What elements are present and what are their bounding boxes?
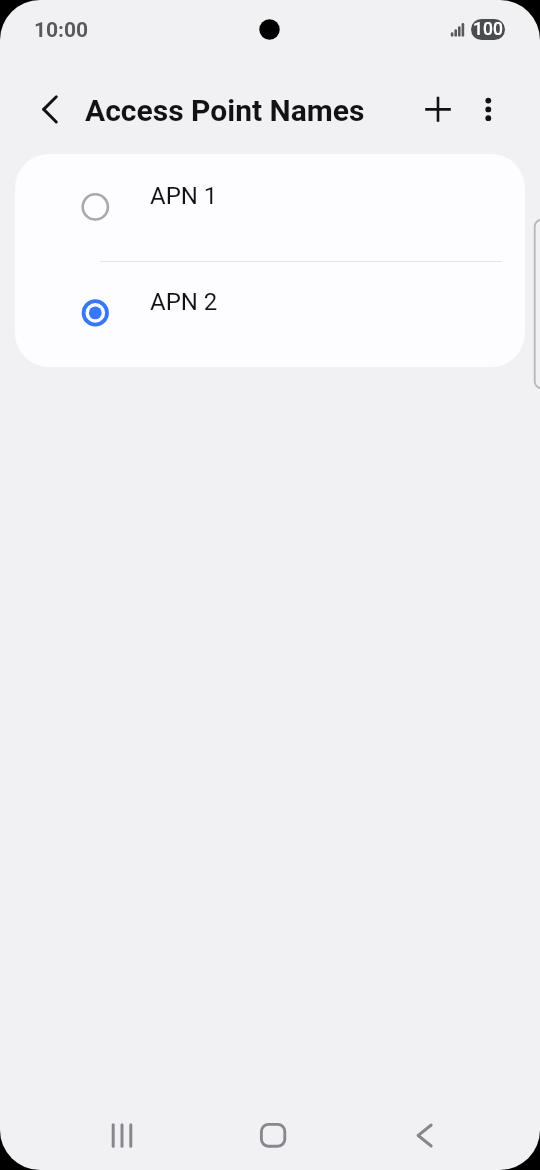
button[interactable]: Back — [348, 1098, 499, 1170]
button[interactable]: Home — [197, 1098, 348, 1170]
button[interactable]: Add — [416, 88, 460, 132]
button[interactable]: More options — [466, 88, 510, 132]
button[interactable]: Recents — [46, 1098, 197, 1170]
staticText: 100 — [473, 19, 503, 40]
staticText: 10:00 — [34, 18, 89, 43]
staticText: Access Point Names — [85, 93, 365, 128]
button[interactable]: Navigate up — [22, 88, 65, 131]
button[interactable]: APN 1 — [15, 154, 525, 260]
staticText: APN 1 — [150, 182, 218, 210]
staticText: APN 2 — [150, 288, 218, 316]
button[interactable]: APN 2 — [15, 260, 525, 366]
